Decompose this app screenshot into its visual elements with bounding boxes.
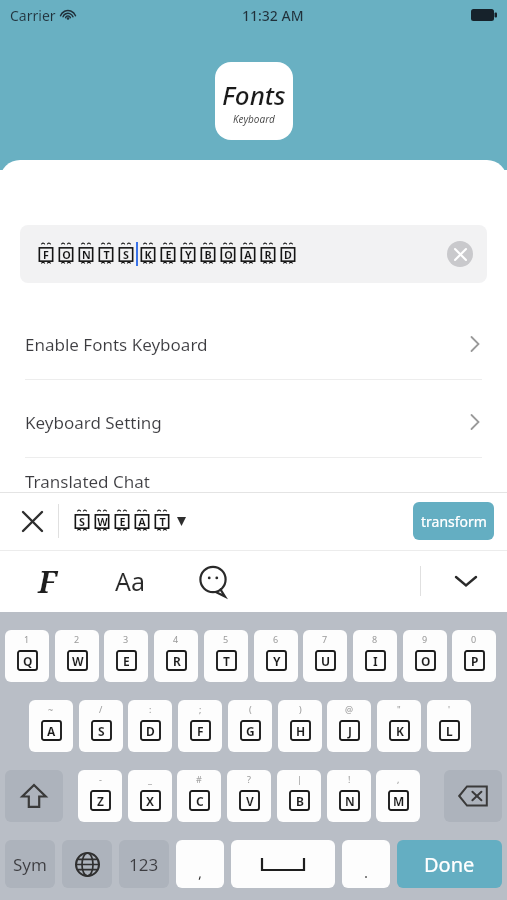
staticText: K [396, 723, 404, 739]
button[interactable]: : [128, 700, 172, 752]
button[interactable]: 7 [303, 630, 347, 682]
staticText: E [119, 514, 126, 529]
button[interactable]: ( [228, 700, 272, 752]
button[interactable]: Close [10, 492, 55, 550]
staticText: 9 [422, 633, 428, 645]
button[interactable]: transform [413, 502, 494, 540]
button[interactable]: S [72, 492, 186, 550]
staticText: Keyboard [233, 112, 275, 126]
staticText: 123 [129, 853, 159, 876]
staticText: # [196, 773, 202, 785]
button[interactable]: Change language [62, 840, 112, 888]
button[interactable]: 1 [5, 630, 49, 682]
button[interactable]: ) [278, 700, 322, 752]
button[interactable]: 2 [55, 630, 99, 682]
staticText: S [79, 514, 85, 529]
staticText: R [173, 653, 181, 669]
staticText: A [244, 247, 252, 262]
staticText: R [264, 247, 272, 262]
staticText: ~ [48, 703, 54, 715]
staticText: 3 [123, 633, 129, 645]
staticText: T [223, 653, 230, 669]
button[interactable]: _ [128, 770, 172, 822]
button[interactable]: . [342, 840, 390, 888]
button[interactable]: Space [231, 840, 335, 888]
button[interactable]: Collapse keyboard [438, 550, 493, 612]
staticText: A [47, 723, 56, 739]
staticText: ! [348, 773, 351, 785]
button[interactable]: " [377, 700, 421, 752]
staticText: , [198, 862, 203, 882]
staticText: ) [299, 703, 302, 715]
staticText: H [296, 723, 306, 739]
staticText: X [146, 793, 155, 809]
staticText: N [82, 247, 91, 262]
staticText: I [373, 653, 378, 669]
staticText: K [144, 247, 152, 262]
staticText: W [97, 514, 108, 529]
button[interactable]: Text style [100, 550, 160, 612]
staticText: 1 [24, 633, 30, 645]
button[interactable]: Fonts [215, 62, 293, 140]
staticText: 4 [173, 633, 179, 645]
button[interactable]: 3 [104, 630, 148, 682]
staticText: / [99, 703, 103, 715]
button[interactable]: ' [427, 700, 471, 752]
button[interactable]: 0 [452, 630, 496, 682]
button[interactable]: Backspace [444, 770, 502, 822]
staticText: Carrier [10, 6, 56, 25]
button[interactable]: 8 [353, 630, 397, 682]
staticText: , [397, 773, 400, 785]
button[interactable]: | [277, 770, 321, 822]
button[interactable]: Enable Fonts Keyboard [0, 310, 507, 378]
button[interactable]: 5 [204, 630, 248, 682]
staticText: V [246, 793, 254, 809]
button[interactable]: ! [327, 770, 371, 822]
button[interactable]: Sym [5, 840, 55, 888]
staticText: ; [199, 703, 202, 715]
button[interactable]: 4 [154, 630, 198, 682]
button[interactable]: F [20, 225, 487, 283]
button[interactable]: Keyboard Setting [0, 388, 507, 456]
button[interactable]: ? [227, 770, 271, 822]
staticText: M [393, 793, 405, 809]
staticText: E [123, 653, 130, 669]
staticText: | [297, 773, 302, 785]
staticText: Q [23, 653, 33, 669]
staticText: F [43, 247, 49, 262]
button[interactable]: Shift [5, 770, 63, 822]
staticText: F [197, 723, 204, 739]
button[interactable]: 6 [254, 630, 298, 682]
staticText: Y [185, 247, 192, 262]
button[interactable]: 123 [119, 840, 169, 888]
staticText: Sym [13, 853, 47, 876]
staticText: O [421, 653, 431, 669]
staticText: 0 [471, 633, 477, 645]
staticText: Translated Chat [25, 470, 150, 493]
button[interactable]: - [78, 770, 122, 822]
staticText: D [146, 723, 155, 739]
button[interactable]: # [177, 770, 221, 822]
button[interactable]: Fonts [22, 550, 72, 612]
button[interactable]: Emoji [185, 550, 240, 612]
button[interactable]: / [79, 700, 123, 752]
button[interactable]: Done [397, 840, 502, 888]
staticText: transform [421, 512, 487, 531]
button[interactable]: ~ [29, 700, 73, 752]
staticText: B [296, 793, 304, 809]
button[interactable]: 9 [403, 630, 447, 682]
button[interactable]: @ [327, 700, 371, 752]
staticText: Aa [115, 564, 146, 598]
staticText: U [321, 653, 331, 669]
button[interactable]: , [376, 770, 420, 822]
staticText: E [165, 247, 172, 262]
button[interactable]: Clear text [447, 241, 473, 267]
staticText: P [471, 653, 479, 669]
button[interactable]: ; [178, 700, 222, 752]
staticText: 6 [273, 633, 279, 645]
staticText: N [345, 793, 355, 809]
staticText: B [204, 247, 212, 262]
button[interactable]: , [176, 840, 224, 888]
staticText: Keyboard Setting [25, 411, 162, 434]
staticText: . [364, 862, 369, 882]
